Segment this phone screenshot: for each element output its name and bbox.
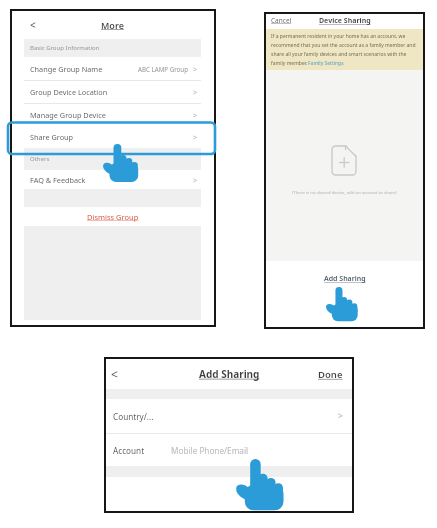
button[interactable]: Change Group Name (24, 57, 201, 80)
staticText: family member. (271, 60, 308, 67)
button[interactable]: < (111, 366, 118, 382)
staticText: Country/... (113, 411, 154, 422)
button[interactable]: < (30, 18, 36, 32)
staticText: Account (113, 445, 145, 456)
staticText: Device Sharing (319, 16, 371, 26)
staticText: Group Device Location (30, 87, 108, 97)
button[interactable]: Add Sharing (324, 274, 366, 284)
button[interactable]: Country/... (106, 399, 352, 433)
staticText: Manage Group Device (30, 110, 106, 120)
staticText: Mobile Phone/Email (171, 445, 249, 456)
button[interactable]: Manage Group Device (24, 104, 201, 126)
staticText: Dismiss Group (87, 212, 139, 222)
button[interactable]: Account (106, 434, 352, 466)
staticText: FAQ & Feedback (30, 175, 86, 185)
button[interactable]: Dismiss Group (24, 207, 201, 226)
staticText: > (193, 175, 198, 185)
staticText: If a permanent resident in your home has… (271, 33, 406, 40)
staticText: share all your family devices and smart … (271, 51, 407, 58)
staticText: Add Sharing (199, 367, 260, 381)
button[interactable]: Cancel (271, 16, 292, 25)
button[interactable]: FAQ & Feedback (24, 170, 201, 189)
staticText: Change Group Name (30, 64, 103, 74)
staticText: Others (30, 155, 50, 163)
staticText: More (101, 19, 124, 31)
button[interactable]: Group Device Location (24, 81, 201, 103)
staticText: > (338, 410, 343, 422)
staticText: > (193, 64, 198, 74)
staticText: Share Group (30, 132, 74, 142)
button[interactable]: Share Group (24, 126, 201, 148)
staticText: > (193, 110, 198, 120)
staticText: recommend that you set the account as a … (271, 42, 416, 49)
staticText: ABC LAMP Group (138, 65, 188, 73)
staticText: Basic Group Information (30, 44, 100, 52)
staticText: (There is no shared device, add an accou… (292, 189, 397, 195)
button[interactable]: Family Settings (308, 60, 344, 67)
staticText: > (193, 87, 198, 97)
staticText: > (193, 132, 198, 142)
button[interactable]: Done (318, 368, 343, 381)
